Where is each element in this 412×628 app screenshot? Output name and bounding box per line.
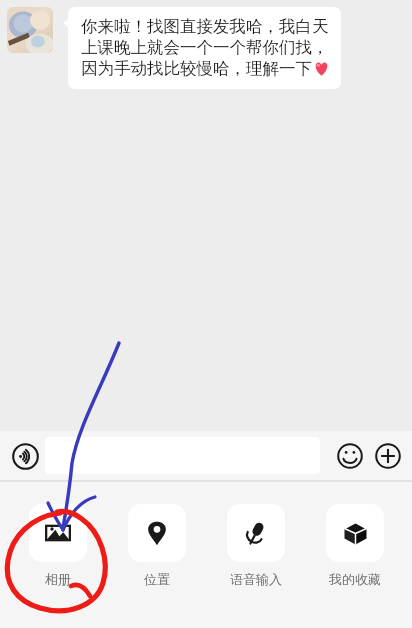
staticText: 语音输入 [230, 571, 282, 587]
staticText: 上课晚上就会一个一个帮你们找， [81, 37, 329, 58]
button[interactable]: More functions [370, 438, 406, 474]
button[interactable]: Message input [45, 437, 320, 474]
button[interactable]: Voice message [5, 436, 45, 476]
button[interactable]: 你来啦！找图直接发我哈，我白天 [68, 7, 341, 89]
staticText: 你来啦！找图直接发我哈，我白天 [81, 16, 329, 37]
button[interactable]: 语音输入 [206, 504, 305, 587]
button[interactable]: 我的收藏 [305, 504, 404, 587]
staticText: 因为手动找比较慢哈，理解一下 [81, 58, 312, 79]
button[interactable]: 相册 [8, 504, 107, 587]
staticText: 位置 [144, 571, 170, 587]
button[interactable]: 位置 [107, 504, 206, 587]
button[interactable]: Emoji [332, 438, 368, 474]
button[interactable]: Avatar [7, 7, 53, 53]
staticText: 相册 [45, 571, 71, 587]
staticText: 我的收藏 [329, 571, 381, 587]
